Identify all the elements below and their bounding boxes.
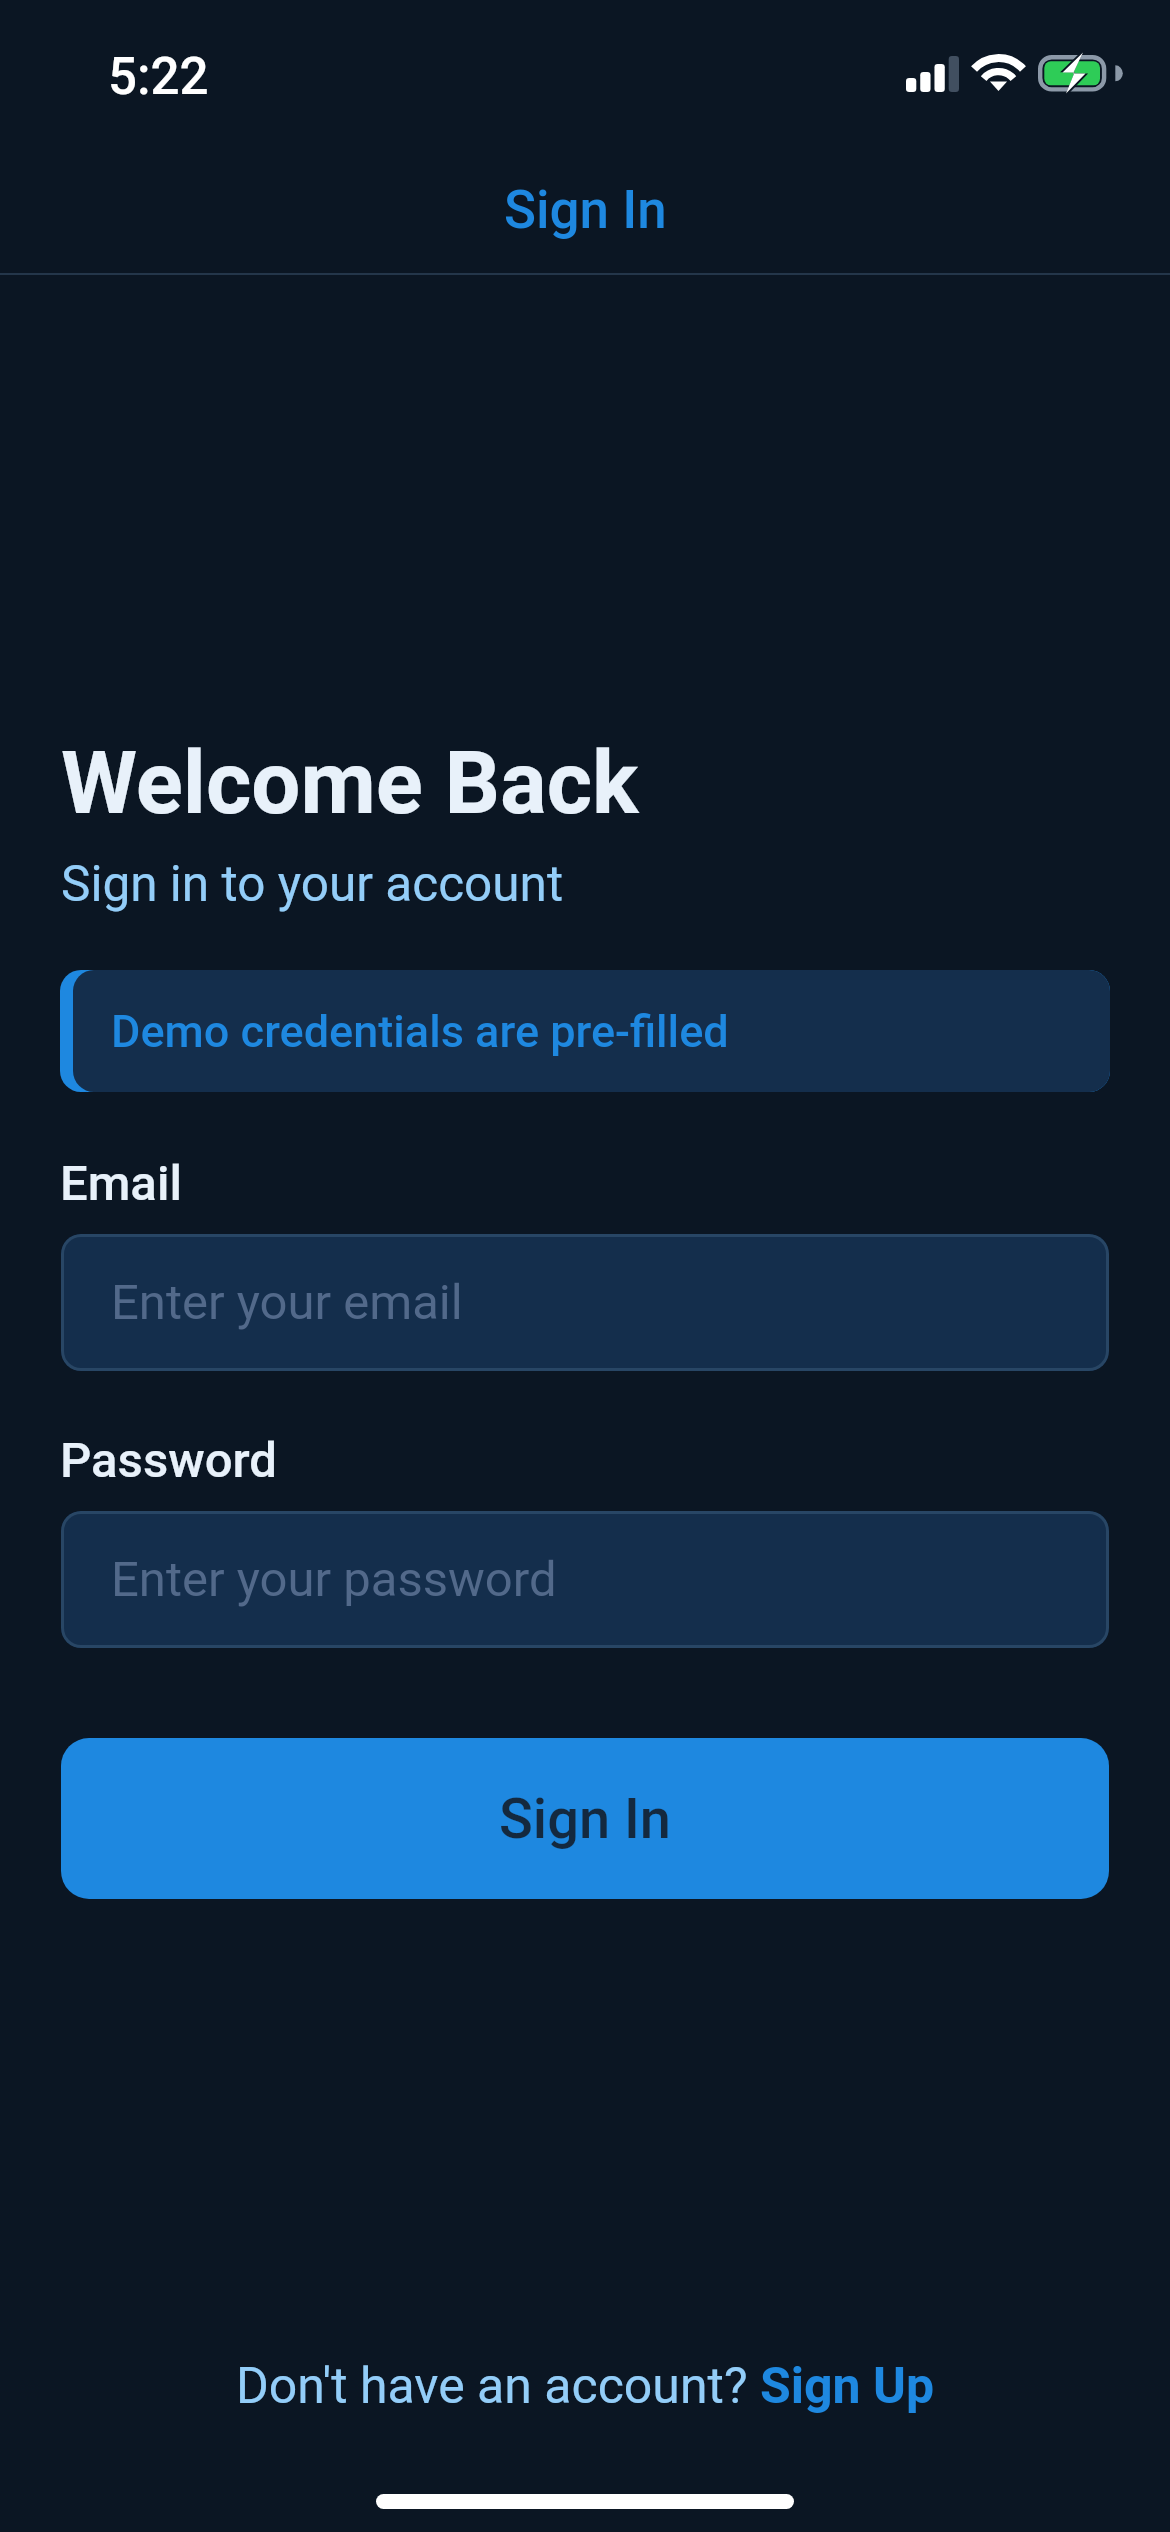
button[interactable]: Don't have an account? [236, 2357, 935, 2416]
staticText: Welcome Back [61, 732, 639, 834]
staticText: Password [60, 1432, 278, 1489]
staticText: Sign In [499, 1786, 671, 1852]
staticText: Enter your password [111, 1551, 557, 1608]
other: Cellular signal strength [906, 56, 959, 92]
button[interactable]: Enter your email [61, 1234, 1109, 1371]
staticText: Demo credentials are pre-filled [111, 1005, 729, 1058]
button[interactable]: Enter your password [61, 1511, 1109, 1648]
staticText: Enter your email [111, 1274, 463, 1331]
staticText: Email [60, 1155, 182, 1212]
button[interactable]: Demo credentials are pre-filled [60, 970, 1110, 1092]
staticText: Don't have an account? [236, 2357, 760, 2416]
button[interactable]: Sign In [61, 1738, 1109, 1899]
staticText: Sign Up [760, 2357, 935, 2416]
other: Battery charging [1038, 55, 1115, 92]
other: Wi-Fi connected [974, 54, 1023, 91]
staticText: Sign in to your account [61, 855, 564, 913]
staticText: 5:22 [108, 47, 209, 107]
button[interactable]: Sign In [0, 148, 1170, 272]
staticText: Sign In [504, 179, 667, 241]
